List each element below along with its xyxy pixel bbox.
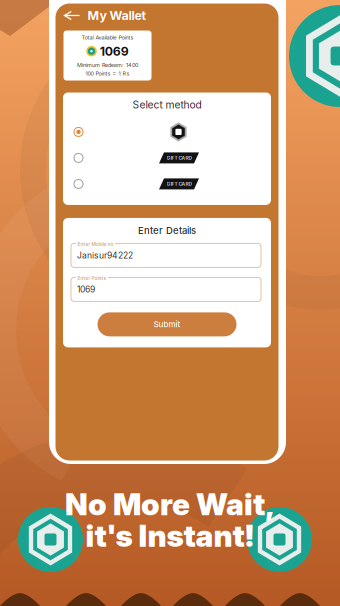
staticText: Submit — [153, 319, 180, 329]
staticText: No More Wait, — [65, 486, 275, 522]
button[interactable] — [63, 119, 271, 145]
staticText: 100 Points = 1 Rs — [85, 70, 129, 77]
staticText: Enter Mobile no — [77, 241, 113, 247]
staticText: GIFT CARD — [166, 181, 191, 187]
staticText: 1069 — [100, 44, 129, 59]
staticText: Total Available Points — [81, 34, 133, 41]
staticText: Select method — [132, 98, 201, 111]
staticText: My Wallet — [87, 8, 146, 23]
button[interactable]: GIFT CARD — [63, 171, 271, 197]
button[interactable]: Submit — [97, 312, 236, 336]
staticText: 1069 — [77, 284, 95, 294]
staticText: it's Instant! — [85, 517, 254, 554]
staticText: GIFT CARD — [166, 155, 191, 161]
staticText: Minimum Redeem: 1400 — [77, 62, 138, 68]
button[interactable]: Back — [59, 6, 84, 25]
staticText: Enter Points — [77, 275, 106, 281]
button[interactable]: GIFT CARD — [63, 145, 271, 171]
staticText: Enter Details — [138, 225, 196, 236]
staticText: Janisur94222 — [77, 250, 133, 260]
